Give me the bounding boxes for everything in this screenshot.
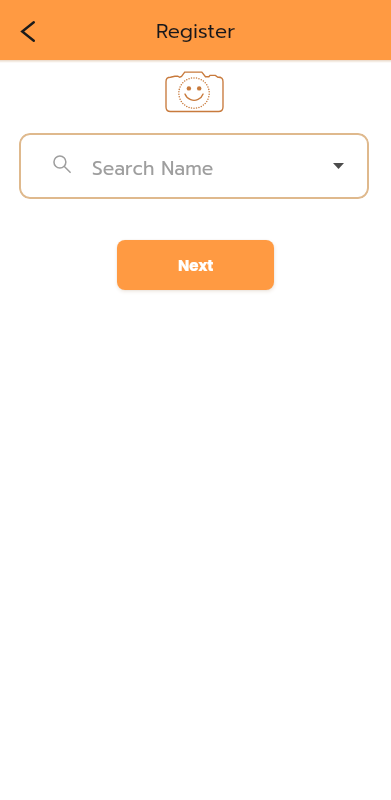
button[interactable]: Search Name [19, 133, 369, 199]
button[interactable]: Next [117, 240, 274, 290]
staticText: Register [156, 16, 236, 46]
button[interactable]: Add photo [166, 68, 225, 113]
button[interactable]: Back [6, 9, 49, 52]
staticText: Next [178, 255, 214, 276]
staticText: Search Name [92, 154, 214, 183]
